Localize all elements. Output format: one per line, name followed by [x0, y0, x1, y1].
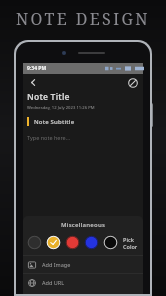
button[interactable]: Blue colour	[84, 235, 99, 250]
staticText: Miscellaneous	[61, 221, 106, 229]
staticText: Pick Color	[123, 236, 139, 250]
staticText: Note Title	[27, 91, 70, 103]
staticText: Note Subtitle	[34, 118, 75, 126]
staticText: NOTE DESIGN	[16, 8, 150, 30]
staticText: Add URL	[42, 279, 65, 286]
button[interactable]: Add Image	[23, 256, 143, 273]
staticText: Type note here...	[27, 134, 71, 141]
button[interactable]: Grey colour	[27, 235, 42, 250]
button[interactable]: Red colour	[65, 235, 80, 250]
button[interactable]: Back	[26, 75, 41, 90]
staticText: 9:34 PM	[27, 65, 47, 72]
button[interactable]: Amber colour	[46, 235, 61, 250]
button[interactable]: Black colour	[103, 235, 118, 250]
staticText: Add Image	[42, 261, 71, 268]
staticText: Wednesday, 12 July 2023 11:26 PM	[27, 105, 95, 111]
button[interactable]: Add URL	[23, 274, 143, 291]
button[interactable]: Save note	[125, 75, 140, 90]
